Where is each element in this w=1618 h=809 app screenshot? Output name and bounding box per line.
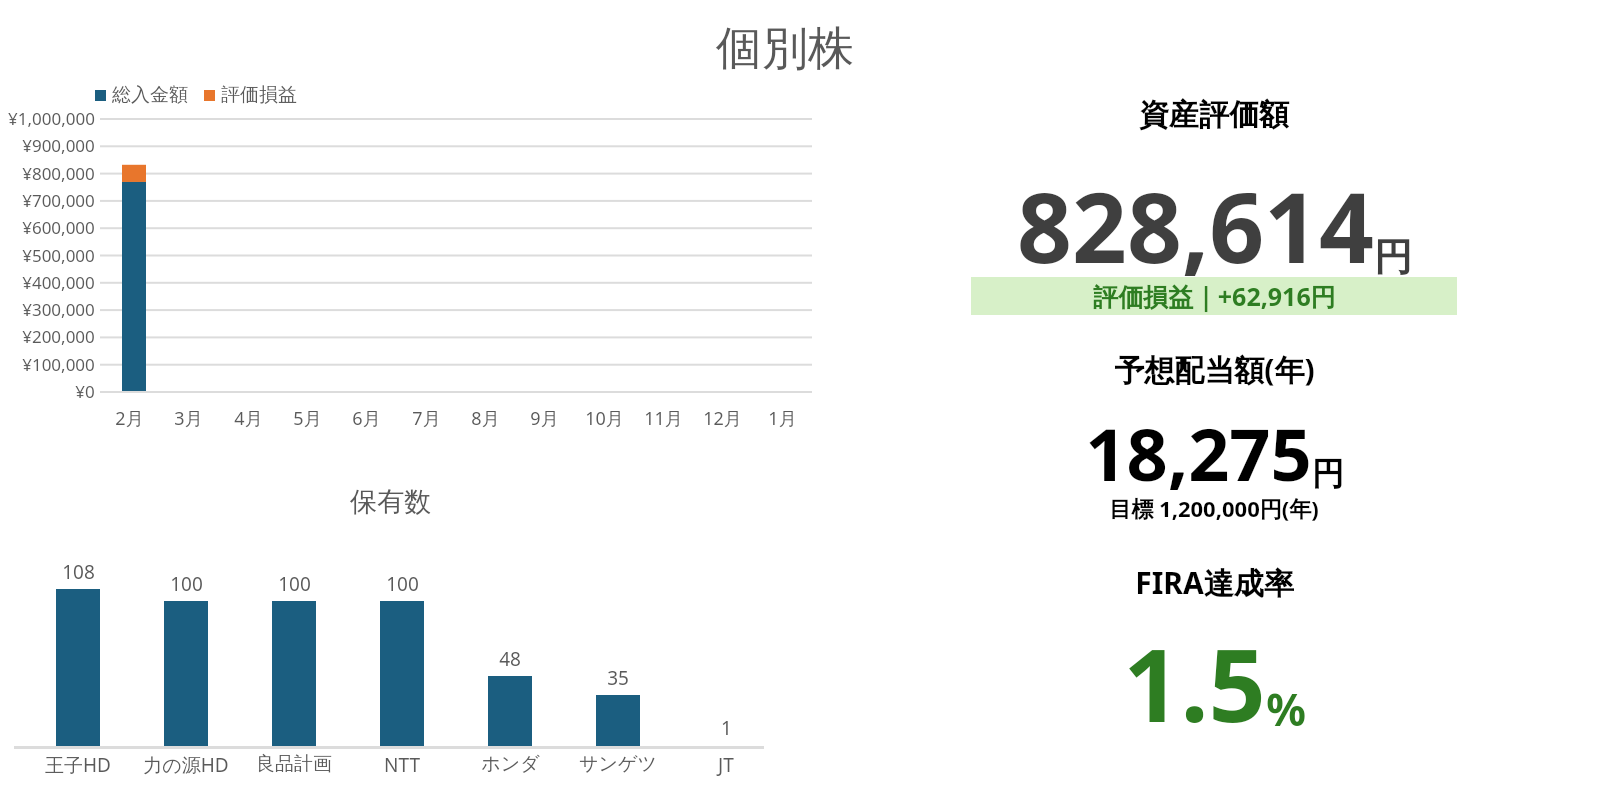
staticText: 18,275 [1085, 404, 1312, 502]
button[interactable]: 良品計画 [240, 752, 348, 776]
staticText: JT [718, 752, 734, 778]
staticText: 5月 [293, 406, 322, 431]
staticText: 王子HD [45, 752, 111, 778]
staticText: FIRA達成率 [1135, 562, 1294, 603]
staticText: 828,614 [1017, 160, 1374, 291]
staticText: 資産評価額 [1139, 96, 1289, 134]
staticText: ¥100,000 [22, 353, 95, 376]
button[interactable]: 828,614 [940, 160, 1488, 291]
button[interactable]: 保有数 [250, 485, 530, 519]
staticText: ¥500,000 [22, 244, 95, 267]
staticText: ¥600,000 [22, 216, 95, 239]
staticText: 100 [170, 571, 203, 597]
staticText: 評価損益｜+62,916円 [1093, 279, 1336, 313]
staticText: 個別株 [716, 20, 854, 78]
staticText: 評価損益 [221, 83, 297, 107]
staticText: ¥900,000 [22, 134, 95, 157]
staticText: 8月 [471, 406, 500, 431]
staticText: 35 [607, 665, 629, 691]
staticText: ¥800,000 [22, 162, 95, 185]
button[interactable]: 評価損益｜+62,916円 [971, 277, 1457, 315]
staticText: 108 [62, 559, 95, 585]
staticText: 1.5 [1123, 615, 1266, 751]
staticText: 目標 1,200,000円(年) [1109, 493, 1319, 523]
staticText: 保有数 [350, 485, 431, 519]
staticText: 2月 [115, 406, 144, 431]
staticText: 1月 [768, 406, 797, 431]
staticText: 100 [278, 571, 311, 597]
button[interactable]: 個別株 [640, 20, 930, 78]
button[interactable]: 総入金額 [95, 83, 297, 107]
staticText: 11月 [644, 406, 683, 431]
button[interactable]: 1.5 [940, 615, 1488, 751]
staticText: 1 [721, 715, 732, 741]
button[interactable]: 王子HD [24, 752, 132, 778]
staticText: 良品計画 [256, 752, 332, 776]
staticText: 予想配当額(年) [1114, 349, 1315, 390]
button[interactable]: ホンダ [456, 752, 564, 776]
staticText: ¥1,000,000 [8, 107, 95, 130]
staticText: 9月 [530, 406, 559, 431]
button[interactable]: 予想配当額(年) [940, 349, 1488, 390]
staticText: 10月 [585, 406, 624, 431]
staticText: サンゲツ [579, 752, 657, 776]
staticText: 3月 [174, 406, 203, 431]
staticText: 7月 [412, 406, 441, 431]
button[interactable]: 目標 1,200,000円(年) [940, 493, 1488, 523]
button[interactable]: サンゲツ [564, 752, 672, 776]
staticText: ¥0 [75, 380, 95, 403]
staticText: 円 [1374, 233, 1412, 281]
staticText: 100 [386, 571, 419, 597]
staticText: 4月 [234, 406, 263, 431]
button[interactable]: NTT [348, 752, 456, 778]
staticText: 力の源HD [143, 752, 229, 778]
button[interactable]: 資産評価額 [940, 96, 1488, 134]
staticText: ホンダ [481, 752, 540, 776]
button[interactable]: 力の源HD [132, 752, 240, 778]
staticText: 48 [499, 646, 521, 672]
button[interactable]: FIRA達成率 [940, 562, 1488, 603]
staticText: 円 [1312, 454, 1344, 494]
staticText: 総入金額 [112, 83, 188, 107]
staticText: ¥200,000 [22, 325, 95, 348]
button[interactable]: JT [672, 752, 780, 778]
button[interactable]: 18,275 [940, 404, 1488, 502]
staticText: ¥300,000 [22, 298, 95, 321]
staticText: 6月 [352, 406, 381, 431]
staticText: 12月 [703, 406, 742, 431]
staticText: % [1266, 679, 1306, 739]
staticText: ¥400,000 [22, 271, 95, 294]
staticText: NTT [384, 752, 420, 778]
staticText: ¥700,000 [22, 189, 95, 212]
